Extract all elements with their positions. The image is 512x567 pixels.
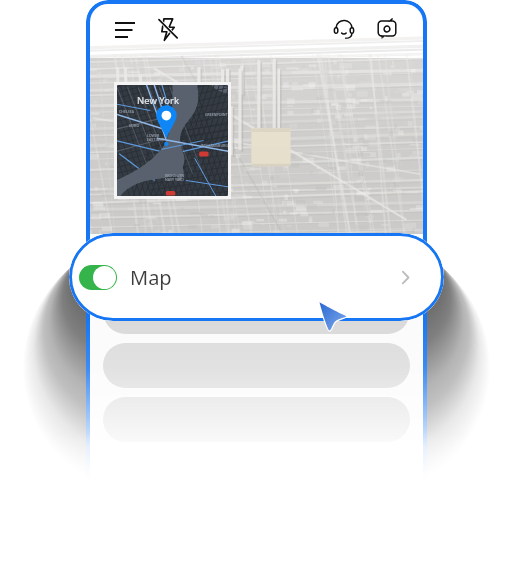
staticText: BROOKLYN NAVY YARD [165,173,184,183]
button[interactable]: Support [327,12,361,46]
staticText: Map [130,264,172,291]
staticText: CHELSEA [119,109,135,114]
button[interactable]: Menu [109,13,141,45]
button[interactable] [103,397,410,442]
button[interactable] [103,289,410,334]
button[interactable] [103,343,410,388]
staticText: New York [137,94,179,107]
button[interactable]: Switch camera [370,12,404,46]
staticText: SOHO [129,123,140,128]
button[interactable]: Map toggle [69,233,444,321]
button[interactable] [103,235,410,280]
button[interactable]: Map toggle [79,265,117,290]
staticText: WILLIAMSBURG [201,143,228,148]
staticText: LOWER EAST SIDE [147,133,165,143]
staticText: GREENPOINT [205,112,228,117]
button[interactable]: Flash off [150,12,184,46]
